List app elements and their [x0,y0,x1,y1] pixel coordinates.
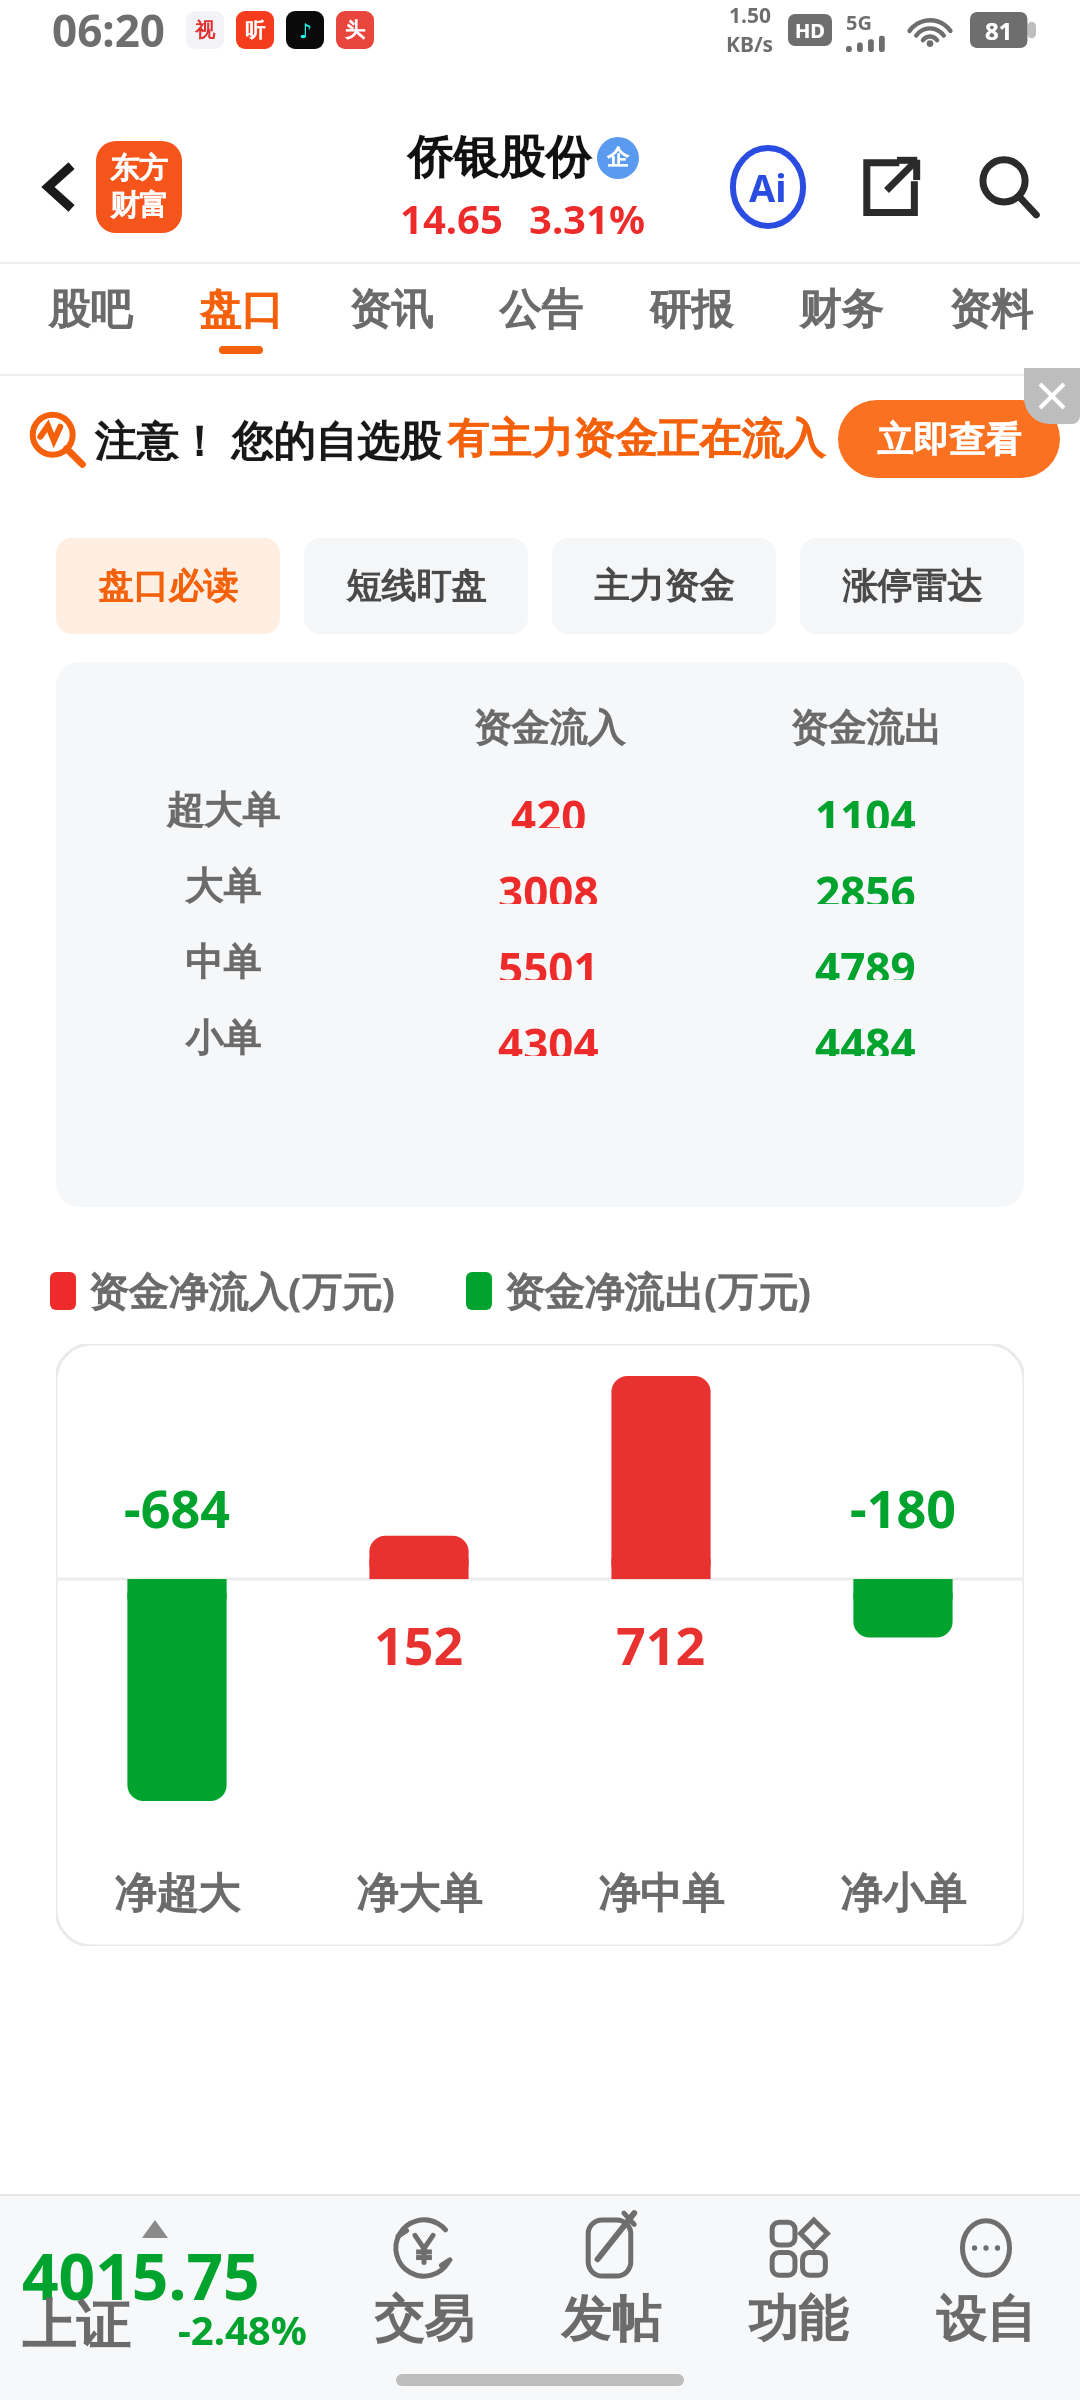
staticText: 3008 [498,862,599,904]
button[interactable]: 资讯 [316,264,466,374]
staticText: 盘口必读 [98,564,238,608]
button[interactable]: 盘口 [165,264,316,374]
staticText: 短线盯盘 [346,564,486,608]
button[interactable]: 立即查看 [838,400,1060,478]
staticText: 侨银股份 [407,129,591,187]
staticText: 头 [345,18,365,43]
button[interactable]: 关闭 [1024,368,1080,424]
staticText: 5501 [498,938,599,980]
staticText: 公告 [499,284,583,337]
staticText: 财务 [799,284,883,337]
staticText: 设自 [936,2288,1036,2351]
button[interactable]: 设自 [892,2196,1080,2400]
button[interactable]: 分享 [848,145,932,229]
button[interactable]: 涨停雷达 [800,538,1024,634]
staticText: 资料 [949,284,1033,337]
staticText: 净小单 [840,1868,966,1921]
button[interactable]: 股吧 [14,264,165,374]
staticText: 420 [511,786,587,828]
staticText: 712 [616,1609,706,1680]
staticText: 资金流出 [790,704,942,752]
staticText: 净中单 [598,1868,724,1921]
staticText: 资讯 [349,284,433,337]
staticText: 14.65 [400,191,503,245]
staticText: 小单 [185,1014,261,1056]
staticText: 发帖 [561,2288,661,2351]
staticText: 有主力资金正在流入 [447,413,825,466]
staticText: 主力资金 [594,564,734,608]
button[interactable]: 资料 [916,264,1066,374]
staticText: 交易 [374,2288,474,2351]
staticText: 4484 [815,1014,916,1056]
staticText: 上证 [22,2292,130,2360]
staticText: 4304 [498,1014,599,1056]
staticText: 5G [846,9,872,36]
staticText: -180 [850,1472,956,1543]
staticText: 涨停雷达 [842,564,982,608]
button[interactable]: 返回 [14,142,104,232]
staticText: 盘口 [199,284,283,337]
staticText: 4789 [815,938,916,980]
staticText: 财富 [110,187,168,224]
staticText: 152 [374,1609,464,1680]
staticText: 1.50 [729,1,771,30]
staticText: 净大单 [356,1868,482,1921]
button[interactable]: 东方 [96,141,182,233]
button[interactable]: 主力资金 [552,538,776,634]
staticText: 功能 [748,2288,848,2351]
staticText: -684 [124,1472,230,1543]
button[interactable]: AI 助手 [726,145,810,229]
staticText: 06:20 [52,0,166,60]
button[interactable]: 盘口必读 [56,538,280,634]
staticText: 资金净流入(万元) [88,1263,396,1318]
button[interactable]: 发帖 [517,2196,704,2400]
staticText: 资金流入 [473,704,625,752]
button[interactable]: 财务 [766,264,916,374]
staticText: ♪ [299,19,312,42]
staticText: 3.31% [529,191,645,245]
staticText: 2856 [815,862,916,904]
staticText: 81 [985,14,1013,47]
staticText: 研报 [649,284,733,337]
staticText: Ai [749,161,787,213]
staticText: HD [795,17,825,44]
staticText: 净超大 [114,1868,240,1921]
staticText: 东方 [110,150,168,187]
staticText: 中单 [185,938,261,980]
staticText: 听 [245,18,265,43]
button[interactable]: 搜索 [964,142,1054,232]
staticText: 4015.75 [22,2232,260,2319]
button[interactable]: 功能 [704,2196,892,2400]
staticText: KB/s [726,30,774,59]
button[interactable]: 交易 [330,2196,517,2400]
button[interactable]: 研报 [616,264,766,374]
staticText: 资金净流出(万元) [504,1263,812,1318]
button[interactable]: 短线盯盘 [304,538,528,634]
staticText: 大单 [185,862,261,904]
staticText: 注意！ 您的自选股 [94,411,441,468]
staticText: 企 [607,144,629,172]
staticText: 1104 [815,786,916,828]
staticText: 视 [195,18,215,43]
staticText: 超大单 [166,786,280,828]
button[interactable]: 公告 [466,264,616,374]
button[interactable]: 4015.75 [0,2196,330,2400]
staticText: -2.48% [178,2302,307,2356]
staticText: 股吧 [48,284,132,337]
staticText: 立即查看 [877,417,1021,462]
